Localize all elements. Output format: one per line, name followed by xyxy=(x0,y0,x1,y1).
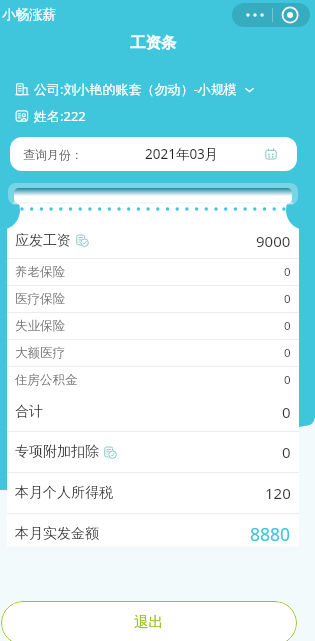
staticText: 0 xyxy=(284,291,291,307)
button[interactable]: 公司:刘小艳的账套（勿动）-小规模 xyxy=(15,79,269,99)
button[interactable]: 查询月份： xyxy=(10,137,297,171)
button[interactable]: 失业保险 xyxy=(15,313,291,339)
staticText: 查询月份： xyxy=(23,147,83,162)
staticText: 失业保险 xyxy=(15,318,65,334)
staticText: 8880 xyxy=(250,522,291,546)
button[interactable]: 专项附加扣除 xyxy=(15,432,291,472)
staticText: 0 xyxy=(284,345,291,361)
staticText: 退出 xyxy=(134,613,163,631)
staticText: 公司:刘小艳的账套（勿动）-小规模 xyxy=(34,80,237,98)
staticText: 大额医疗 xyxy=(15,345,65,361)
button[interactable]: 住房公积金 xyxy=(15,367,291,393)
staticText: 0 xyxy=(284,318,291,334)
staticText: 姓名:222 xyxy=(34,107,86,125)
staticText: 0 xyxy=(284,264,291,280)
button[interactable]: Menu and close xyxy=(232,3,310,27)
staticText: 0 xyxy=(282,402,291,422)
staticText: 应发工资 xyxy=(15,232,71,250)
button[interactable]: 退出 xyxy=(1,601,297,641)
staticText: 合计 xyxy=(15,403,43,421)
button[interactable]: 医疗保险 xyxy=(15,286,291,312)
staticText: 工资条 xyxy=(130,33,177,53)
staticText: 2021年03月 xyxy=(145,145,219,163)
staticText: 本月个人所得税 xyxy=(15,484,113,502)
button[interactable]: 养老保险 xyxy=(15,259,291,285)
button[interactable]: 合计 xyxy=(15,393,291,431)
other: Pick month xyxy=(264,147,278,161)
staticText: 0 xyxy=(282,442,291,462)
other: Select company xyxy=(243,83,256,96)
staticText: 9000 xyxy=(256,231,291,251)
staticText: 住房公积金 xyxy=(15,372,78,388)
staticText: 医疗保险 xyxy=(15,291,65,307)
button[interactable]: 本月个人所得税 xyxy=(15,473,291,513)
button[interactable]: 应发工资 xyxy=(15,223,291,258)
button[interactable]: 本月实发金额 xyxy=(15,514,291,554)
staticText: 本月实发金额 xyxy=(15,525,99,543)
button[interactable]: 大额医疗 xyxy=(15,340,291,366)
staticText: 专项附加扣除 xyxy=(15,443,99,461)
staticText: 120 xyxy=(265,483,291,503)
staticText: 养老保险 xyxy=(15,264,65,280)
staticText: 小畅涨薪 xyxy=(2,6,56,23)
staticText: 0 xyxy=(284,372,291,388)
